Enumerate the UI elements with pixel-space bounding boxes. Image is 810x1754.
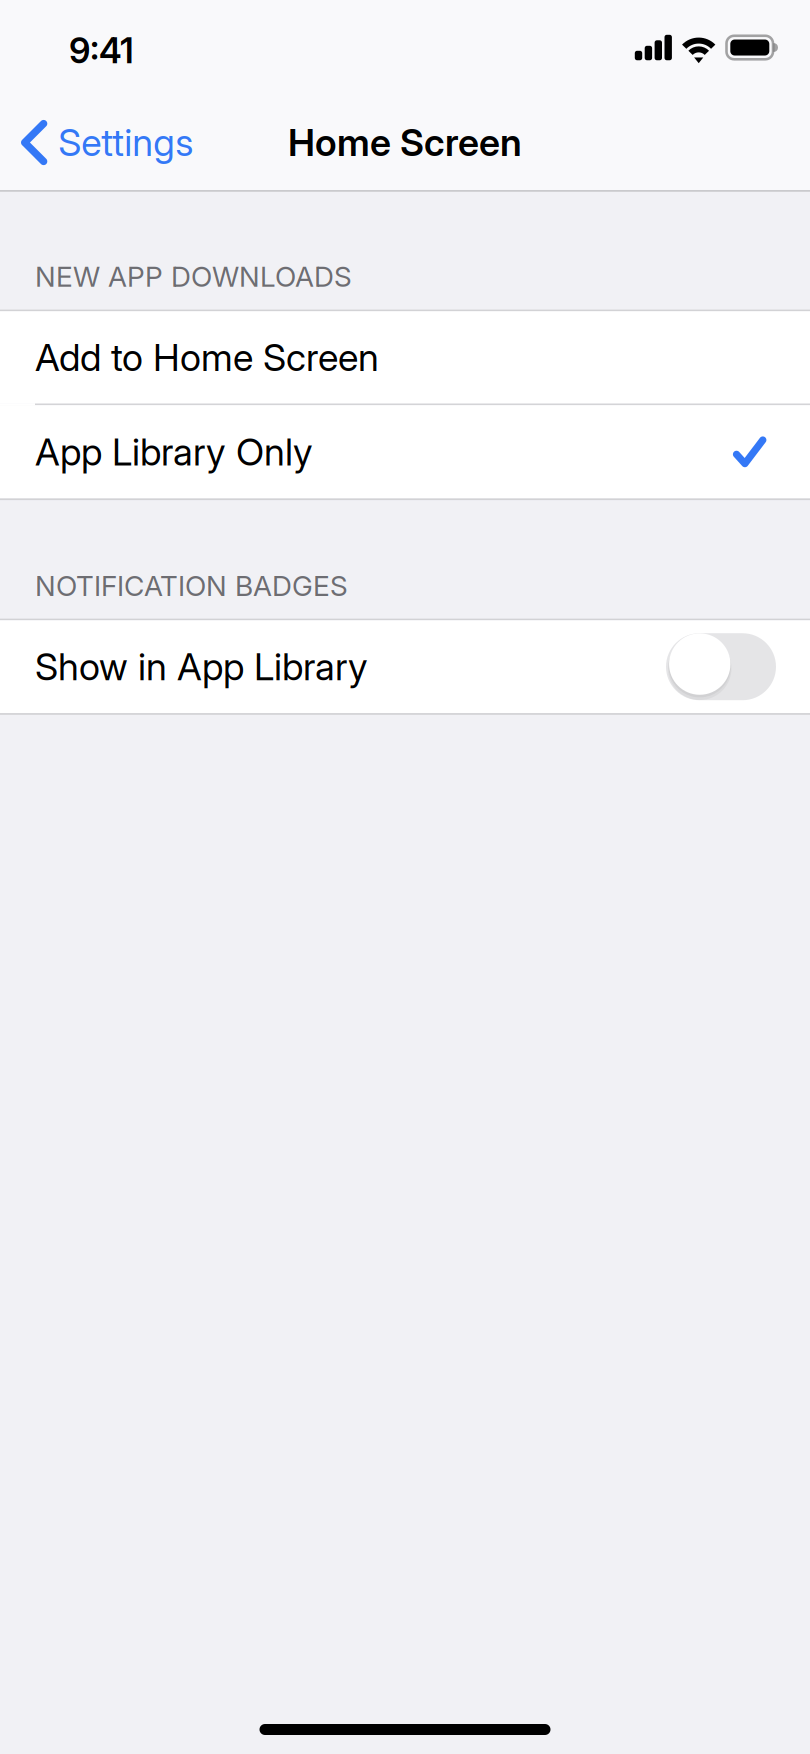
staticText: NOTIFICATION BADGES: [35, 569, 348, 603]
staticText: 9:41: [69, 30, 134, 71]
staticText: Settings: [58, 120, 193, 165]
staticText: Show in App Library: [35, 644, 368, 689]
button[interactable]: Add to Home Screen: [0, 311, 810, 403]
staticText: App Library Only: [35, 429, 313, 474]
staticText: Home Screen: [288, 120, 522, 165]
staticText: Add to Home Screen: [35, 335, 379, 380]
button[interactable]: Settings: [0, 95, 213, 190]
staticText: NEW APP DOWNLOADS: [35, 260, 352, 294]
button[interactable]: App Library Only: [0, 405, 810, 498]
button[interactable]: Show in App Library: [0, 620, 810, 713]
